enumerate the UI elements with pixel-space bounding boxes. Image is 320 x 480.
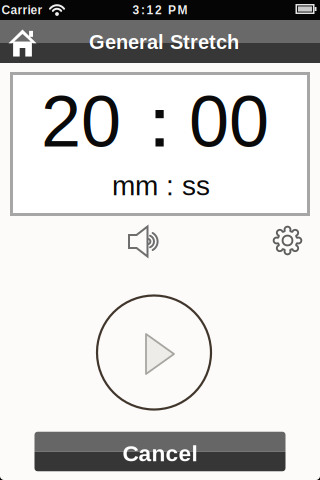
staticText: 3:12 PM (132, 3, 187, 17)
staticText: Carrier (1, 3, 42, 17)
staticText: Cancel (122, 441, 197, 466)
button[interactable]: Cancel (34, 432, 285, 471)
button[interactable]: Start (94, 292, 214, 412)
staticText: General Stretch (89, 31, 239, 53)
button[interactable]: Home (2, 23, 42, 61)
button[interactable]: Settings (272, 225, 302, 255)
button[interactable]: Sound (127, 224, 161, 258)
staticText: 00 (189, 81, 269, 162)
staticText: mm : ss (112, 170, 210, 201)
staticText: 20 (41, 81, 121, 162)
